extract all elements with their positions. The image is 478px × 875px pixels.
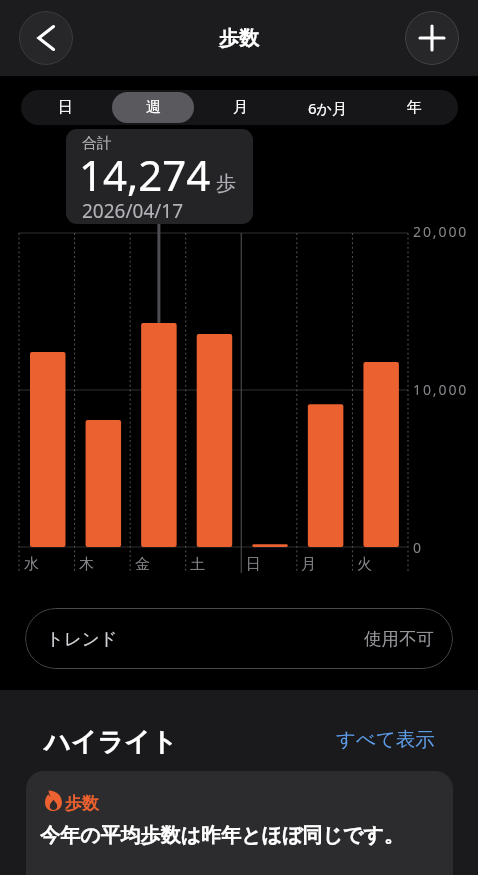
staticText: 火	[357, 555, 372, 574]
staticText: 日	[58, 98, 73, 117]
button[interactable]: 歩数	[26, 771, 453, 875]
staticText: 0	[413, 538, 423, 557]
staticText: 歩数	[219, 26, 259, 51]
staticText: 木	[79, 555, 94, 574]
button[interactable]: トレンド	[25, 608, 453, 669]
button[interactable]: Back	[19, 11, 73, 65]
staticText: 歩数	[65, 793, 99, 814]
staticText: 合計	[82, 134, 112, 153]
button[interactable]: 週	[112, 92, 194, 123]
button[interactable]: 年	[374, 92, 455, 123]
staticText: 金	[135, 555, 150, 574]
button[interactable]: 月	[200, 92, 281, 123]
staticText: 月	[233, 98, 248, 117]
staticText: 14,274	[79, 146, 211, 203]
staticText: 月	[301, 555, 316, 574]
button[interactable]: 日	[24, 92, 106, 123]
staticText: すべて表示	[336, 727, 435, 752]
staticText: 年	[407, 98, 422, 117]
staticText: 土	[190, 555, 205, 574]
staticText: 10,000	[413, 380, 469, 399]
staticText: 水	[24, 555, 39, 574]
button[interactable]: すべて表示	[336, 727, 435, 752]
button[interactable]: Add	[405, 11, 459, 65]
staticText: 20,000	[413, 222, 469, 241]
staticText: ハイライト	[44, 726, 178, 759]
staticText: 今年の平均歩数は昨年とほぼ同じです。	[40, 823, 404, 848]
staticText: 週	[146, 98, 161, 117]
staticText: 日	[246, 555, 261, 574]
staticText: 歩	[216, 171, 236, 196]
button[interactable]: 6か月	[287, 92, 368, 123]
staticText: トレンド	[46, 628, 118, 650]
staticText: 使用不可	[364, 628, 434, 650]
staticText: 2026/04/17	[82, 198, 184, 224]
staticText: 6か月	[308, 98, 347, 118]
